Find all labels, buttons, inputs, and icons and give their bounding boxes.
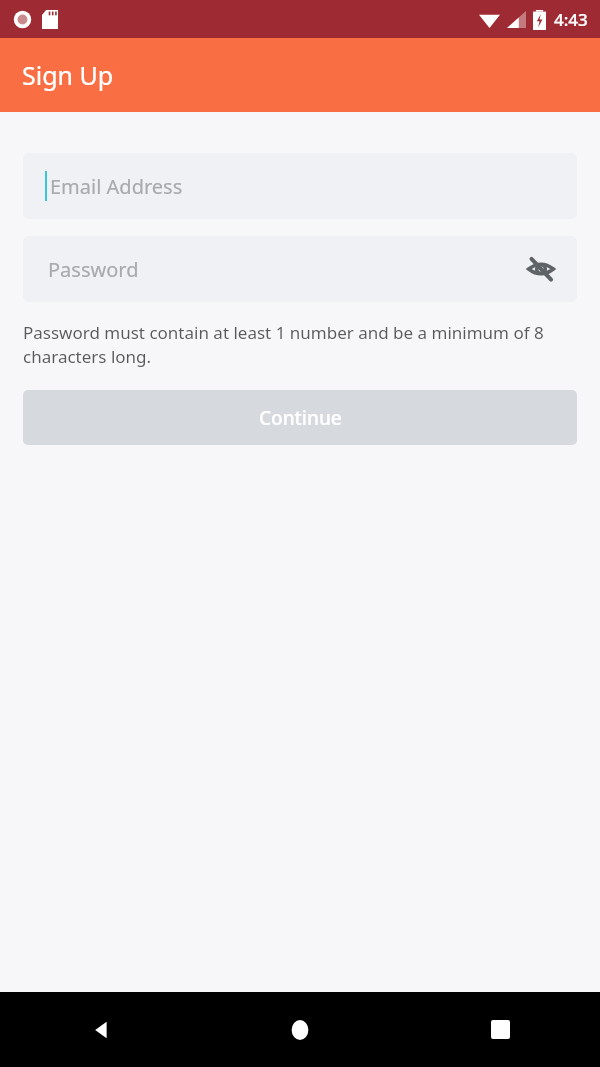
- staticText: 4:43: [554, 8, 588, 31]
- staticText: Email Address: [50, 173, 183, 200]
- staticText: Sign Up: [22, 58, 114, 92]
- staticText: Password: [48, 256, 139, 283]
- button[interactable]: Show password: [523, 251, 559, 287]
- staticText: Password must contain at least 1 number …: [23, 321, 577, 368]
- staticText: Continue: [259, 405, 342, 431]
- button[interactable]: Continue: [23, 390, 577, 445]
- button[interactable]: Home: [200, 992, 400, 1067]
- button[interactable]: Recent apps: [400, 992, 600, 1067]
- button[interactable]: Back: [0, 992, 200, 1067]
- button[interactable]: Password: [23, 236, 577, 302]
- button[interactable]: Email Address: [23, 153, 577, 219]
